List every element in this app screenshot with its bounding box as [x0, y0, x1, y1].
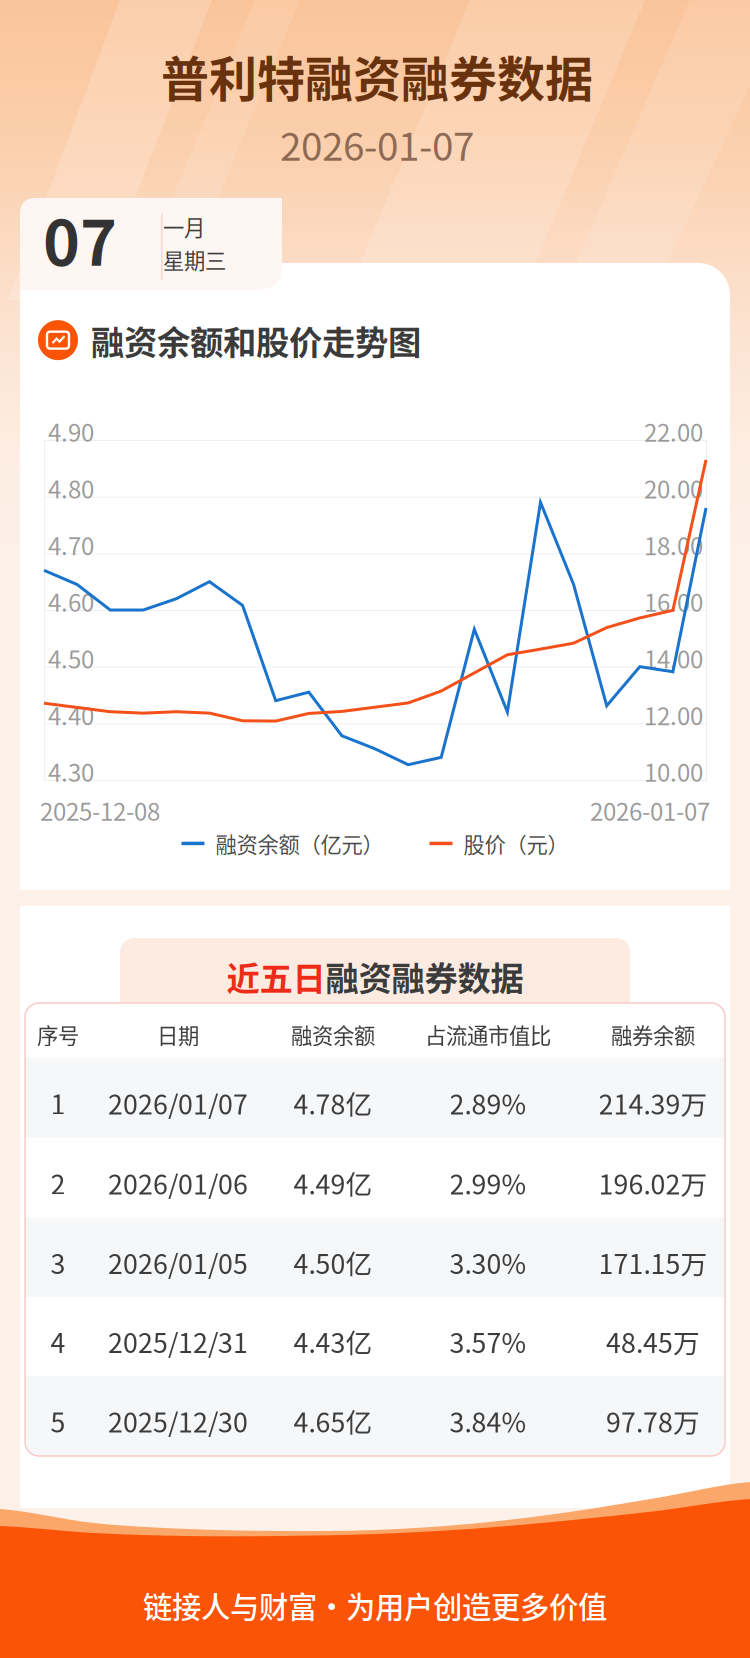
staticText: 4.90: [48, 414, 94, 449]
staticText: 4.65亿: [293, 1401, 372, 1440]
staticText: 近五日: [226, 952, 325, 1000]
staticText: 12.00: [644, 697, 703, 732]
staticText: 3.84%: [449, 1401, 526, 1440]
staticText: 48.45万: [606, 1322, 700, 1361]
staticText: 2026-01-07: [280, 116, 474, 172]
staticText: 占流通市值比: [425, 1019, 551, 1050]
staticText: 4.43亿: [293, 1322, 372, 1361]
staticText: 97.78万: [606, 1401, 700, 1440]
staticText: 10.00: [644, 754, 703, 789]
staticText: 4.49亿: [293, 1163, 372, 1202]
staticText: 14.00: [644, 641, 703, 675]
staticText: 2026/01/06: [108, 1163, 248, 1202]
staticText: 2026/01/05: [108, 1243, 248, 1282]
staticText: 5: [50, 1401, 65, 1440]
staticText: 2026-01-07: [590, 793, 710, 828]
staticText: 星期三: [163, 244, 226, 275]
staticText: 2: [50, 1163, 65, 1202]
staticText: 2025-12-08: [40, 793, 160, 828]
staticText: 20.00: [644, 471, 703, 505]
staticText: 3.30%: [449, 1243, 526, 1282]
staticText: 18.00: [644, 527, 703, 562]
staticText: 序号: [37, 1019, 79, 1050]
staticText: 2.89%: [449, 1083, 526, 1122]
staticText: 1: [50, 1083, 65, 1122]
staticText: 4: [50, 1322, 65, 1361]
staticText: 股价（元）: [463, 828, 568, 859]
staticText: 4.40: [48, 697, 94, 732]
staticText: 2.99%: [449, 1163, 526, 1202]
staticText: 171.15万: [598, 1243, 707, 1282]
staticText: 日期: [157, 1019, 199, 1050]
staticText: 融资融券数据: [325, 952, 523, 1000]
staticText: 融资余额（亿元）: [215, 828, 383, 859]
staticText: 4.30: [48, 754, 94, 789]
staticText: 融券余额: [611, 1019, 695, 1050]
staticText: 2025/12/31: [108, 1322, 248, 1361]
staticText: 链接人与财富·为用户创造更多价值: [143, 1584, 607, 1626]
staticText: 融资余额: [291, 1019, 375, 1050]
staticText: 3: [50, 1243, 65, 1282]
staticText: 196.02万: [598, 1163, 707, 1202]
staticText: 3.57%: [449, 1322, 526, 1361]
staticText: 4.50: [48, 641, 94, 675]
staticText: 一月: [163, 211, 205, 242]
staticText: 4.60: [48, 584, 94, 619]
staticText: 07: [43, 193, 117, 284]
staticText: 2026/01/07: [108, 1083, 248, 1122]
staticText: 2025/12/30: [108, 1401, 248, 1440]
staticText: 22.00: [644, 414, 703, 449]
staticText: 4.50亿: [293, 1243, 372, 1282]
staticText: 融资余额和股价走势图: [91, 316, 421, 364]
staticText: 214.39万: [598, 1083, 707, 1122]
staticText: 普利特融资融券数据: [161, 41, 593, 110]
staticText: 4.78亿: [293, 1083, 372, 1122]
staticText: 16.00: [644, 584, 703, 619]
staticText: 4.80: [48, 471, 94, 505]
staticText: 4.70: [48, 527, 94, 562]
